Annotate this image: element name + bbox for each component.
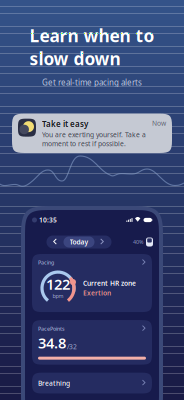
staticText: Now: [152, 119, 166, 128]
staticText: Pacing: [38, 259, 54, 266]
button[interactable]: Pacing: [32, 254, 152, 312]
button[interactable]: Take it easy: [12, 114, 172, 153]
staticText: 122: [46, 274, 70, 294]
staticText: bpm: [52, 292, 63, 299]
staticText: Current HR zone: [83, 279, 136, 288]
staticText: 10:35: [39, 216, 57, 224]
staticText: Today: [69, 238, 88, 246]
staticText: PacePoints: [38, 325, 65, 332]
staticText: Get real-time pacing alerts: [42, 77, 142, 88]
button[interactable]: PacePoints: [32, 320, 152, 365]
staticText: Breathing: [38, 379, 70, 387]
staticText: Exertion: [83, 289, 111, 297]
staticText: Take it easy: [42, 119, 88, 129]
staticText: Learn when to slow down: [29, 24, 154, 70]
staticText: You are exerting yourself. Take a moment…: [42, 130, 146, 148]
staticText: 40%: [133, 238, 143, 246]
button[interactable]: Breathing: [32, 373, 152, 393]
button[interactable]: Today: [46, 235, 111, 248]
staticText: 34.8: [38, 333, 66, 353]
staticText: /32: [67, 342, 77, 351]
